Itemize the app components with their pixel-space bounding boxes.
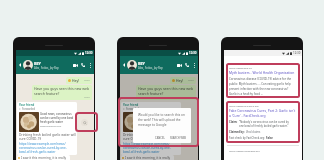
- button[interactable]: Video call: [71, 61, 79, 69]
- staticText: Hey!: [176, 78, 184, 83]
- staticText: Alex, Fotios, Jay Roy: [138, 66, 163, 70]
- staticText: SEARCH WEB: [170, 136, 187, 140]
- staticText: Drinking fresh boiled garlic water will …: [123, 133, 180, 141]
- staticText: https://www.who.int: [229, 66, 252, 69]
- staticText: 10:21: [188, 79, 194, 82]
- staticText: https://www.factcheck.org: [229, 104, 259, 107]
- staticText: 12:30: [189, 51, 197, 55]
- staticText: 12:30: [293, 51, 301, 55]
- button[interactable]: More options: [87, 62, 93, 68]
- button[interactable]: https://www.who.int: [226, 63, 297, 98]
- staticText: Coronavirus disease (COVID-19) advice fo…: [229, 77, 292, 95]
- button[interactable]: https://www.factcheck.org: [226, 101, 298, 143]
- button[interactable]: Search the web: [81, 119, 88, 126]
- button[interactable]: SEARCH WEB: [169, 135, 188, 141]
- staticText: https://www.hoaxslayer.net: [229, 149, 260, 152]
- staticText: Have you guys seen this new web search f…: [138, 86, 194, 96]
- staticText: Viral claims: [246, 130, 261, 134]
- staticText: Hey!: [72, 78, 80, 83]
- button[interactable]: Video call: [175, 61, 183, 69]
- button[interactable]: Call: [183, 61, 191, 69]
- staticText: Claimed by:: [229, 130, 245, 134]
- button[interactable]: More options: [191, 62, 197, 68]
- staticText: CANCEL: [155, 136, 165, 140]
- button[interactable]: Call: [79, 61, 87, 69]
- staticText: I saw it this morning, it is really: [125, 156, 171, 160]
- staticText: Fact check by FactCheck.org:: [229, 136, 265, 140]
- staticText: Drinking fresh boiled garlic water will …: [19, 133, 76, 141]
- button[interactable]: Back: [121, 62, 127, 68]
- staticText: False: [266, 136, 273, 140]
- staticText: "Nobody's corona virus can be cured by o…: [239, 120, 289, 128]
- staticText: BEY: [34, 61, 41, 66]
- staticText: Your friend: [19, 103, 35, 107]
- staticText: 10:21: [188, 96, 194, 99]
- button[interactable]: CANCEL: [154, 135, 166, 141]
- staticText: Have you guys seen this new web search f…: [34, 86, 90, 96]
- staticText: Claim:: [229, 120, 238, 124]
- staticText: www.example.com: [40, 124, 62, 127]
- staticText: 10:21: [84, 96, 90, 99]
- staticText: Myth busters - World Health Organisation: [229, 70, 295, 75]
- staticText: www.example.com: [144, 124, 166, 127]
- staticText: Good news, coronavirus can be cured by o…: [144, 112, 178, 124]
- staticText: Would you like to search this on the web…: [138, 113, 185, 127]
- staticText: 12:30: [85, 51, 93, 55]
- staticText: Forwarded: [126, 107, 140, 111]
- staticText: BEY: [138, 61, 145, 66]
- staticText: https://www.example.com/news/ coronaviru…: [19, 142, 67, 154]
- staticText: https://www.example.com/news/ coronaviru…: [123, 142, 171, 154]
- staticText: 10:21: [84, 79, 90, 82]
- staticText: Good news, coronavirus can be cured by o…: [40, 112, 74, 124]
- staticText: Fake Coronavirus Cures, Part 2: Garlic i…: [229, 108, 296, 118]
- staticText: Forwarded: [22, 107, 36, 111]
- staticText: Alex, Fotios, Jay Roy: [34, 66, 59, 70]
- staticText: I saw it this morning, it is really: [21, 156, 67, 160]
- button[interactable]: Back: [17, 62, 23, 68]
- staticText: Your friend: [123, 103, 139, 107]
